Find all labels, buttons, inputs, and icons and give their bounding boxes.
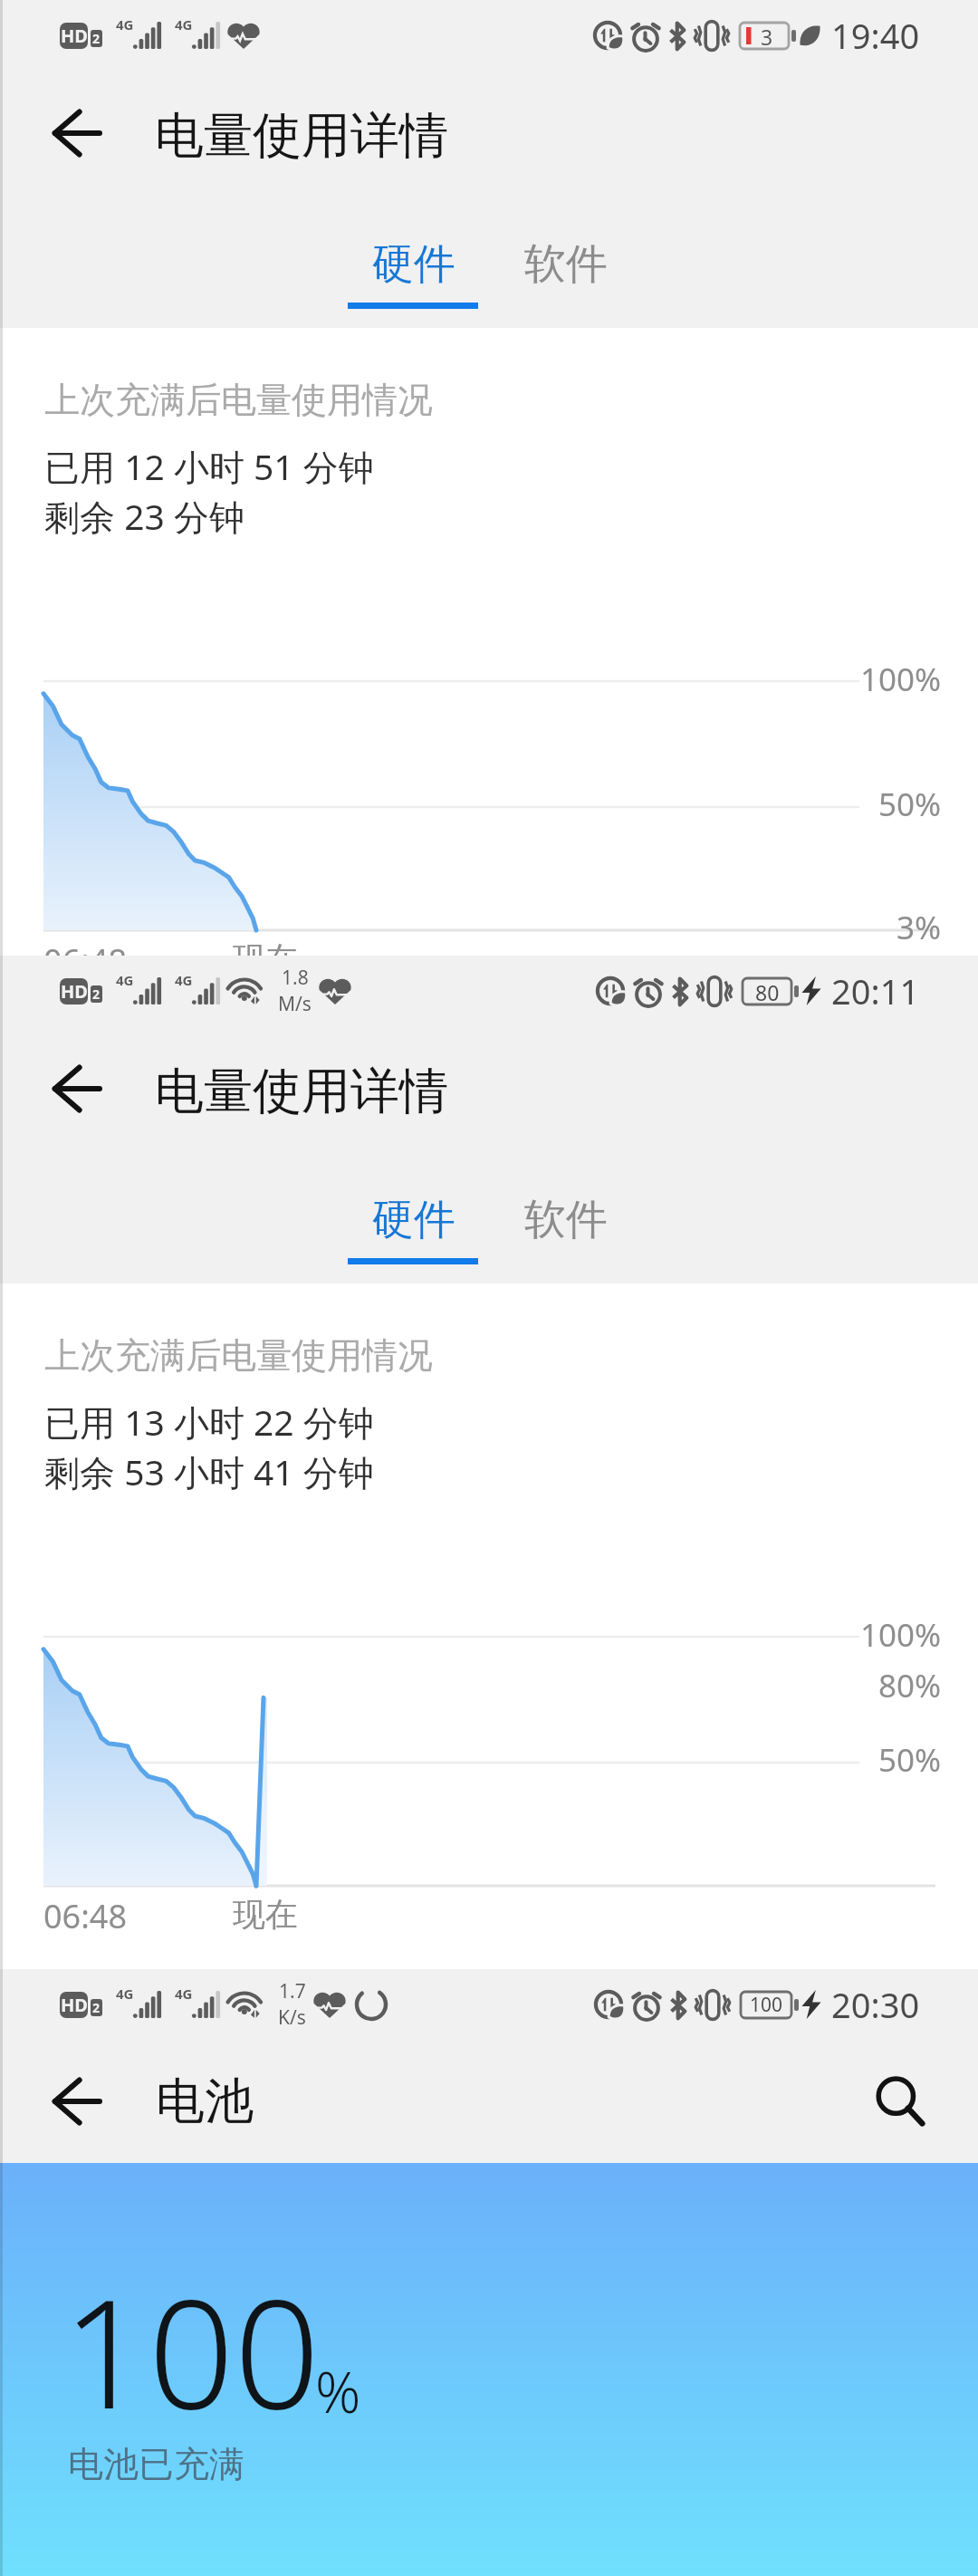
button[interactable]: 软件 bbox=[475, 1148, 656, 1283]
staticText: 电池已充满 bbox=[68, 2442, 244, 2486]
staticText: 1.7 bbox=[279, 1978, 306, 2004]
staticText: M/s bbox=[278, 991, 312, 1017]
staticText: 06:48 bbox=[43, 938, 128, 956]
staticText: 现在 bbox=[233, 938, 298, 956]
staticText: 上次充满后电量使用情况 bbox=[44, 378, 433, 422]
staticText: 100 bbox=[62, 2248, 321, 2453]
staticText: HD bbox=[61, 1993, 88, 2017]
staticText: 剩余 23 分钟 bbox=[44, 492, 244, 540]
staticText: 4G bbox=[175, 15, 193, 34]
staticText: 3% bbox=[896, 906, 942, 949]
staticText: 50% bbox=[878, 783, 942, 826]
staticText: 2 bbox=[92, 985, 101, 1003]
staticText: 4G bbox=[116, 971, 134, 989]
button[interactable]: Back bbox=[31, 88, 121, 178]
staticText: HD bbox=[61, 24, 88, 48]
staticText: 4G bbox=[175, 1985, 193, 2003]
staticText: 50% bbox=[878, 1738, 942, 1782]
staticText: K/s bbox=[278, 2004, 306, 2031]
staticText: 电量使用详情 bbox=[155, 105, 448, 167]
staticText: 80% bbox=[878, 1664, 942, 1707]
staticText: 06:48 bbox=[43, 1894, 128, 1938]
staticText: 100% bbox=[860, 1613, 942, 1657]
staticText: 100% bbox=[860, 658, 942, 701]
staticText: HD bbox=[61, 979, 88, 1004]
staticText: 2 bbox=[92, 1999, 101, 2016]
staticText: 已用 13 小时 22 分钟 bbox=[44, 1398, 374, 1446]
staticText: 硬件 bbox=[372, 1194, 455, 1246]
button[interactable]: 硬件 bbox=[322, 1148, 503, 1283]
button[interactable]: Back bbox=[31, 1043, 121, 1134]
button[interactable]: Search bbox=[855, 2056, 945, 2147]
staticText: 20:30 bbox=[831, 1981, 920, 2028]
staticText: % bbox=[315, 2353, 361, 2429]
staticText: 20:11 bbox=[831, 967, 920, 1014]
staticText: 80 bbox=[755, 978, 780, 1004]
button[interactable]: Back bbox=[31, 2056, 121, 2147]
staticText: 软件 bbox=[524, 1194, 608, 1246]
staticText: 电量使用详情 bbox=[155, 1061, 448, 1122]
staticText: 3 bbox=[761, 23, 773, 49]
staticText: 现在 bbox=[233, 1894, 298, 1935]
staticText: 100 bbox=[750, 1992, 783, 2018]
staticText: 已用 12 小时 51 分钟 bbox=[44, 442, 374, 490]
button[interactable]: 硬件 bbox=[322, 192, 503, 328]
staticText: 1.8 bbox=[282, 965, 309, 991]
staticText: 4G bbox=[116, 15, 134, 34]
staticText: 电池 bbox=[156, 2071, 254, 2132]
staticText: 剩余 53 小时 41 分钟 bbox=[44, 1447, 374, 1495]
staticText: 硬件 bbox=[372, 238, 455, 291]
staticText: 4G bbox=[116, 1985, 134, 2003]
staticText: 2 bbox=[92, 30, 101, 47]
staticText: 软件 bbox=[524, 238, 608, 291]
staticText: 4G bbox=[175, 971, 193, 989]
button[interactable]: 软件 bbox=[475, 192, 656, 328]
staticText: 19:40 bbox=[831, 12, 920, 59]
staticText: 上次充满后电量使用情况 bbox=[44, 1333, 433, 1378]
